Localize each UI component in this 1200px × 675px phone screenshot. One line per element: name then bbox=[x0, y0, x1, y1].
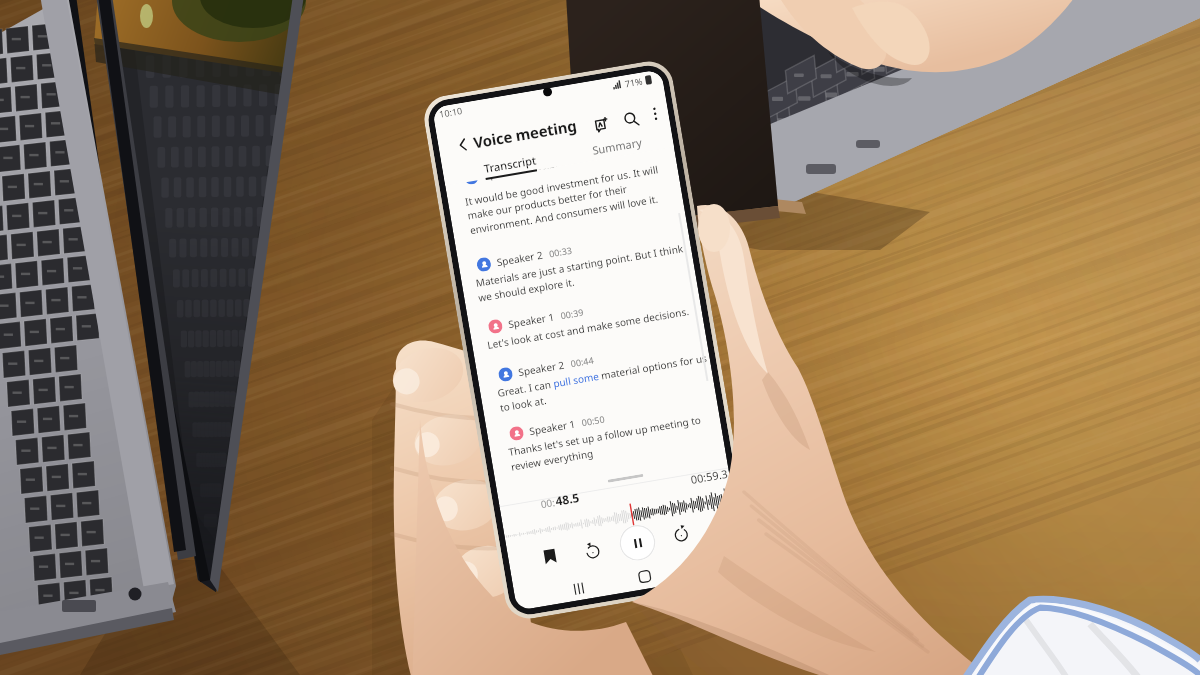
staticText: Thanks let's set up a follow up meeting … bbox=[507, 410, 721, 474]
button[interactable]: Summary bbox=[588, 131, 646, 161]
button[interactable]: Rewind 5 seconds bbox=[581, 539, 604, 562]
staticText: 00:27 bbox=[535, 156, 561, 172]
button[interactable]: Pause bbox=[617, 522, 658, 563]
staticText: Speaker 2 bbox=[517, 357, 566, 379]
button[interactable]: Speaker 2 bbox=[497, 333, 713, 414]
button[interactable]: Speaker 2 bbox=[476, 223, 693, 304]
staticText: Voice meeting bbox=[472, 115, 579, 152]
button[interactable]: Recent apps bbox=[567, 577, 590, 600]
staticText: 00: bbox=[540, 495, 557, 511]
button[interactable]: More options bbox=[644, 102, 667, 125]
staticText: Materials are just a starting point. But… bbox=[475, 241, 689, 305]
button[interactable]: Transcript bbox=[479, 149, 541, 183]
button[interactable]: Home bbox=[633, 565, 656, 588]
staticText: 10:10 bbox=[438, 104, 464, 120]
staticText: Speaker 1 bbox=[507, 309, 556, 331]
staticText: 00:50 bbox=[581, 412, 606, 428]
staticText: 48.5 bbox=[554, 489, 580, 509]
button[interactable]: Search bbox=[618, 106, 643, 132]
staticText: Transcript bbox=[483, 152, 537, 176]
staticText: It would be good investment for us. It w… bbox=[464, 160, 674, 237]
staticText: 00:59.3 bbox=[689, 466, 729, 487]
button[interactable]: Transcribe bbox=[589, 111, 615, 136]
staticText: Great. I can pull some material options … bbox=[496, 351, 710, 415]
staticText: 71% bbox=[624, 74, 643, 89]
staticText: Summary bbox=[591, 134, 643, 158]
staticText: Speaker 2 bbox=[483, 160, 532, 182]
staticText: 00:44 bbox=[570, 353, 595, 369]
button[interactable]: Back bbox=[450, 132, 475, 157]
staticText: 00:33 bbox=[548, 243, 574, 259]
button[interactable]: Speaker 1 bbox=[508, 393, 723, 473]
staticText: Let's look at cost and make some decisio… bbox=[486, 304, 691, 352]
button[interactable]: Back bbox=[700, 551, 723, 574]
staticText: Speaker 1 bbox=[528, 416, 577, 438]
staticText: 00:39 bbox=[559, 305, 585, 321]
button[interactable]: Forward 5 seconds bbox=[669, 522, 692, 545]
button[interactable]: Speaker 1 bbox=[487, 285, 702, 351]
button[interactable]: Bookmark bbox=[538, 545, 561, 568]
staticText: Speaker 2 bbox=[496, 248, 544, 269]
